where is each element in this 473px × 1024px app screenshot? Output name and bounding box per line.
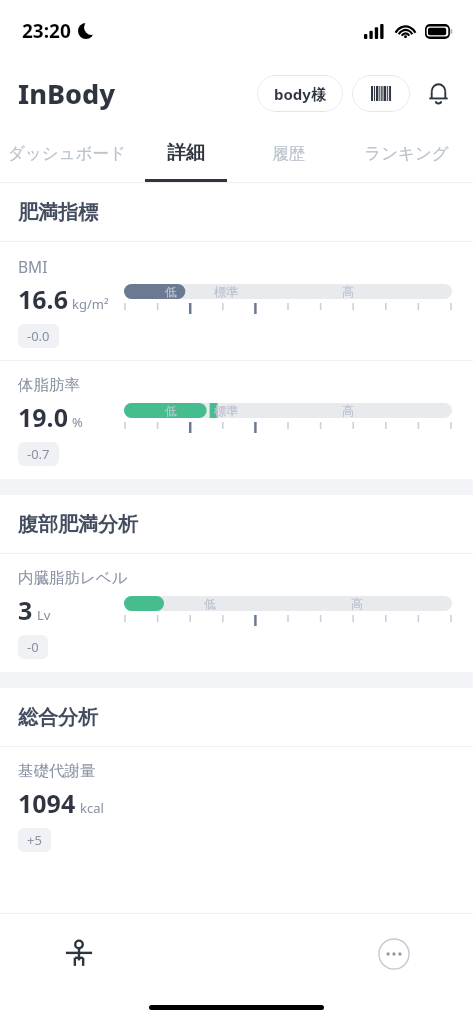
staticText: 19.0 [18,400,68,434]
staticText: ランキング [364,143,449,164]
staticText: 標準 [214,284,238,299]
button[interactable]: ダッシュボード [0,124,134,182]
staticText: 高 [342,284,354,299]
staticText: 基礎代謝量 [18,761,96,781]
staticText: ダッシュボード [8,143,126,164]
staticText: InBody [18,75,116,112]
staticText: 標準 [214,403,238,418]
staticText: -0 [27,638,39,656]
button[interactable]: BMI [0,242,473,360]
button[interactable]: 基礎代謝量 [0,747,473,865]
staticText: 体脂肪率 [18,375,80,395]
staticText: 総合分析 [18,705,98,730]
button[interactable]: body様 [257,75,343,112]
staticText: kg/m² [72,295,109,313]
button[interactable]: More options [315,926,473,982]
staticText: +5 [27,831,42,849]
staticText: 履歴 [272,143,305,164]
button[interactable]: 履歴 [237,124,340,182]
staticText: 高 [351,596,363,611]
staticText: % [72,413,83,431]
staticText: body様 [274,84,326,104]
staticText: 1094 [18,786,76,820]
staticText: 3 [18,593,33,627]
button[interactable]: 内臓脂肪レベル [0,554,473,672]
staticText: 詳細 [167,141,205,165]
button[interactable]: Notifications [418,73,458,113]
staticText: -0.7 [27,445,50,463]
staticText: 高 [342,403,354,418]
staticText: Lv [37,606,51,624]
staticText: 肥満指標 [18,200,98,225]
button[interactable]: Body composition [0,926,157,982]
staticText: 腹部肥満分析 [18,512,138,537]
staticText: BMI [18,256,48,277]
button[interactable]: Barcode scanner [352,75,410,112]
staticText: 23:20 [22,18,71,44]
button[interactable]: 体脂肪率 [0,361,473,479]
button[interactable]: 詳細 [134,124,237,182]
staticText: -0.0 [27,327,50,345]
staticText: 16.6 [18,282,68,316]
staticText: 低 [165,284,177,299]
staticText: 低 [204,596,216,611]
staticText: 内臓脂肪レベル [18,568,128,588]
button[interactable]: ランキング [340,124,473,182]
staticText: 低 [165,403,177,418]
staticText: kcal [80,799,104,817]
